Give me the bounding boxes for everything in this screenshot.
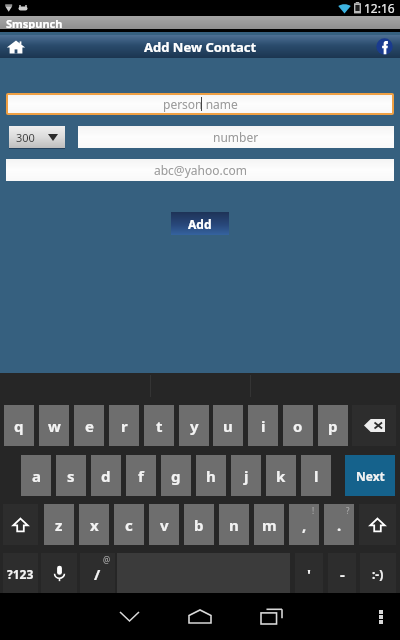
staticText: i bbox=[261, 416, 266, 436]
staticText: Add bbox=[188, 216, 212, 232]
staticText: d bbox=[101, 466, 111, 486]
staticText: g bbox=[171, 466, 181, 486]
staticText: a bbox=[32, 466, 41, 486]
staticText: c bbox=[125, 515, 133, 535]
button[interactable]: ?123 bbox=[3, 553, 38, 594]
button[interactable]: w bbox=[39, 405, 69, 446]
button[interactable]: l bbox=[301, 455, 331, 496]
staticText: / bbox=[94, 564, 101, 584]
staticText: ! bbox=[312, 505, 315, 516]
button[interactable]: g bbox=[161, 455, 191, 496]
button[interactable]: x bbox=[79, 504, 109, 545]
staticText: ?123 bbox=[7, 566, 34, 582]
button[interactable]: a bbox=[21, 455, 51, 496]
button[interactable]: c bbox=[114, 504, 144, 545]
staticText: ' bbox=[307, 564, 311, 584]
button[interactable]: i bbox=[248, 405, 278, 446]
button[interactable]: z bbox=[44, 504, 74, 545]
staticText: abc@yahoo.com bbox=[154, 162, 247, 178]
staticText: . bbox=[337, 515, 342, 535]
staticText: s bbox=[67, 466, 75, 486]
staticText: - bbox=[340, 564, 345, 584]
button[interactable]: p bbox=[318, 405, 348, 446]
button[interactable]: h bbox=[196, 455, 226, 496]
button[interactable]: j bbox=[231, 455, 261, 496]
button[interactable]: person name bbox=[8, 95, 392, 113]
staticText: l bbox=[314, 466, 319, 486]
button[interactable]: number bbox=[78, 126, 394, 148]
button[interactable]: bksp bbox=[352, 405, 396, 446]
staticText: u bbox=[223, 416, 233, 436]
button[interactable]: . bbox=[324, 504, 354, 545]
staticText: number bbox=[213, 129, 259, 145]
button[interactable]: , bbox=[289, 504, 319, 545]
button[interactable]: shift bbox=[3, 504, 38, 545]
button[interactable]: Add bbox=[171, 212, 229, 235]
button[interactable]: Hide keyboard bbox=[101, 593, 157, 640]
staticText: j bbox=[244, 466, 249, 486]
button[interactable]: abc@yahoo.com bbox=[6, 159, 394, 181]
button[interactable]: f bbox=[126, 455, 156, 496]
staticText: y bbox=[190, 416, 199, 436]
button[interactable]: mic bbox=[41, 553, 77, 594]
button[interactable]: shift bbox=[359, 504, 396, 545]
button[interactable]: t bbox=[144, 405, 174, 446]
button[interactable]: Facebook bbox=[376, 38, 393, 55]
staticText: m bbox=[262, 515, 277, 535]
button[interactable]: m bbox=[254, 504, 284, 545]
button[interactable]: e bbox=[74, 405, 104, 446]
button[interactable]: :-) bbox=[360, 553, 396, 594]
button[interactable]: r bbox=[109, 405, 139, 446]
staticText: e bbox=[85, 416, 94, 436]
button[interactable]: k bbox=[266, 455, 296, 496]
staticText: ? bbox=[346, 505, 350, 516]
button[interactable]: Home bbox=[6, 37, 26, 57]
staticText: h bbox=[206, 466, 216, 486]
staticText: Next bbox=[356, 468, 385, 484]
button[interactable]: o bbox=[283, 405, 313, 446]
staticText: Smspunch bbox=[6, 16, 63, 29]
staticText: n bbox=[229, 515, 239, 535]
staticText: :-) bbox=[372, 566, 384, 582]
staticText: 12:16 bbox=[364, 0, 395, 16]
staticText: person name bbox=[163, 96, 238, 112]
staticText: b bbox=[194, 515, 204, 535]
staticText: @ bbox=[103, 554, 111, 565]
button[interactable]: v bbox=[149, 504, 179, 545]
button[interactable]: u bbox=[213, 405, 243, 446]
button[interactable]: n bbox=[219, 504, 249, 545]
button[interactable]: y bbox=[179, 405, 209, 446]
staticText: f bbox=[138, 466, 144, 486]
staticText: Add New Contact bbox=[144, 38, 257, 56]
button[interactable]: space bbox=[117, 553, 290, 594]
staticText: , bbox=[302, 515, 307, 535]
staticText: p bbox=[328, 416, 338, 436]
button[interactable]: 300 bbox=[9, 126, 65, 148]
staticText: r bbox=[121, 416, 128, 436]
button[interactable]: / bbox=[80, 553, 115, 594]
staticText: o bbox=[293, 416, 303, 436]
staticText: w bbox=[48, 416, 61, 436]
button[interactable]: Home bbox=[172, 593, 228, 640]
staticText: q bbox=[14, 416, 24, 436]
staticText: k bbox=[276, 466, 286, 486]
button[interactable]: b bbox=[184, 504, 214, 545]
button[interactable]: s bbox=[56, 455, 86, 496]
staticText: x bbox=[90, 515, 99, 535]
staticText: 300 bbox=[16, 130, 35, 145]
button[interactable]: Next bbox=[345, 455, 395, 496]
button[interactable]: - bbox=[328, 553, 356, 594]
staticText: t bbox=[156, 416, 163, 436]
staticText: z bbox=[55, 515, 63, 535]
button[interactable]: Recents bbox=[243, 593, 299, 640]
button[interactable]: More options bbox=[362, 593, 400, 640]
button[interactable]: ' bbox=[295, 553, 323, 594]
staticText: v bbox=[160, 515, 169, 535]
button[interactable]: d bbox=[91, 455, 121, 496]
button[interactable]: q bbox=[4, 405, 34, 446]
